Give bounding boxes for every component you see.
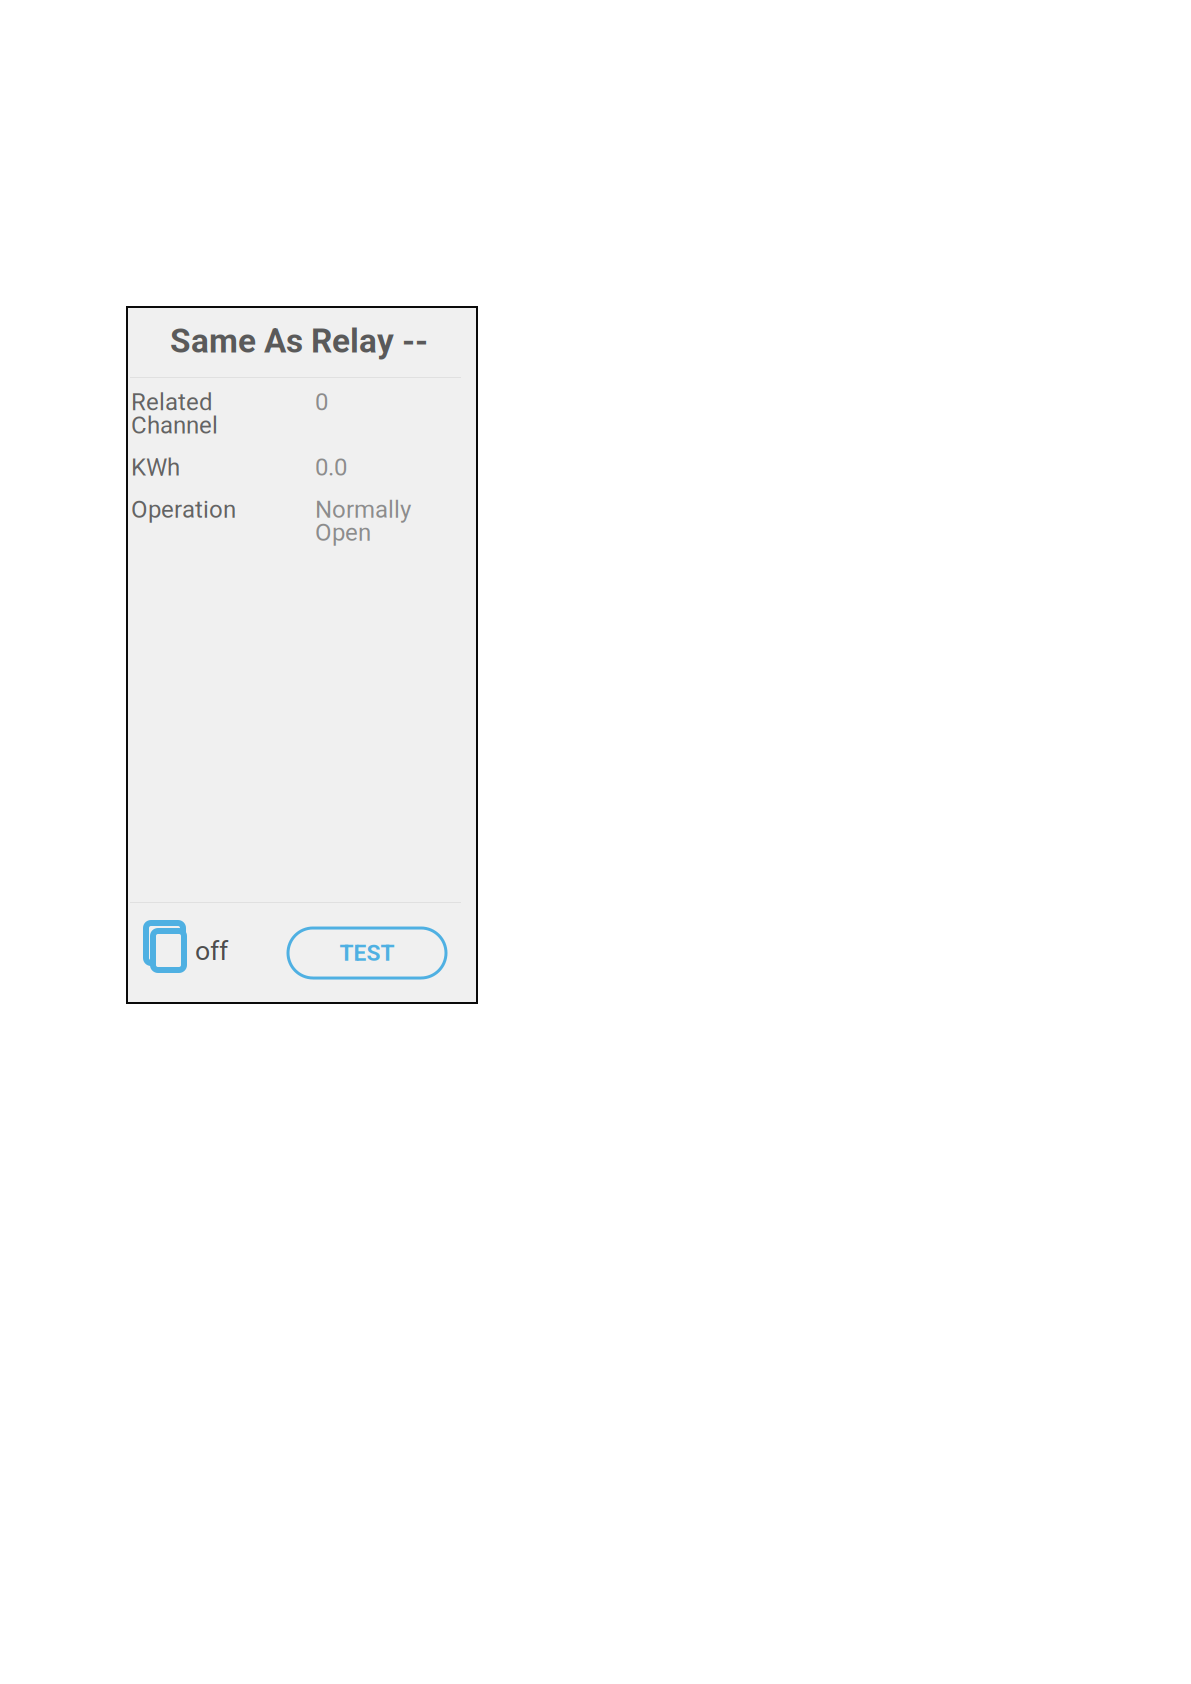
staticText: Same As Relay --	[170, 321, 428, 361]
button[interactable]: TEST	[288, 928, 446, 978]
staticText: TEST	[339, 940, 394, 966]
staticText: KWh	[131, 453, 180, 481]
staticText: Operation	[131, 495, 236, 523]
staticText: Related Channel	[131, 388, 218, 439]
staticText: Normally Open	[315, 495, 411, 547]
staticText: off	[195, 935, 228, 967]
staticText: 0	[315, 388, 328, 416]
staticText: 0.0	[315, 453, 347, 481]
button[interactable]: Toggle relay, currently off	[143, 921, 231, 985]
